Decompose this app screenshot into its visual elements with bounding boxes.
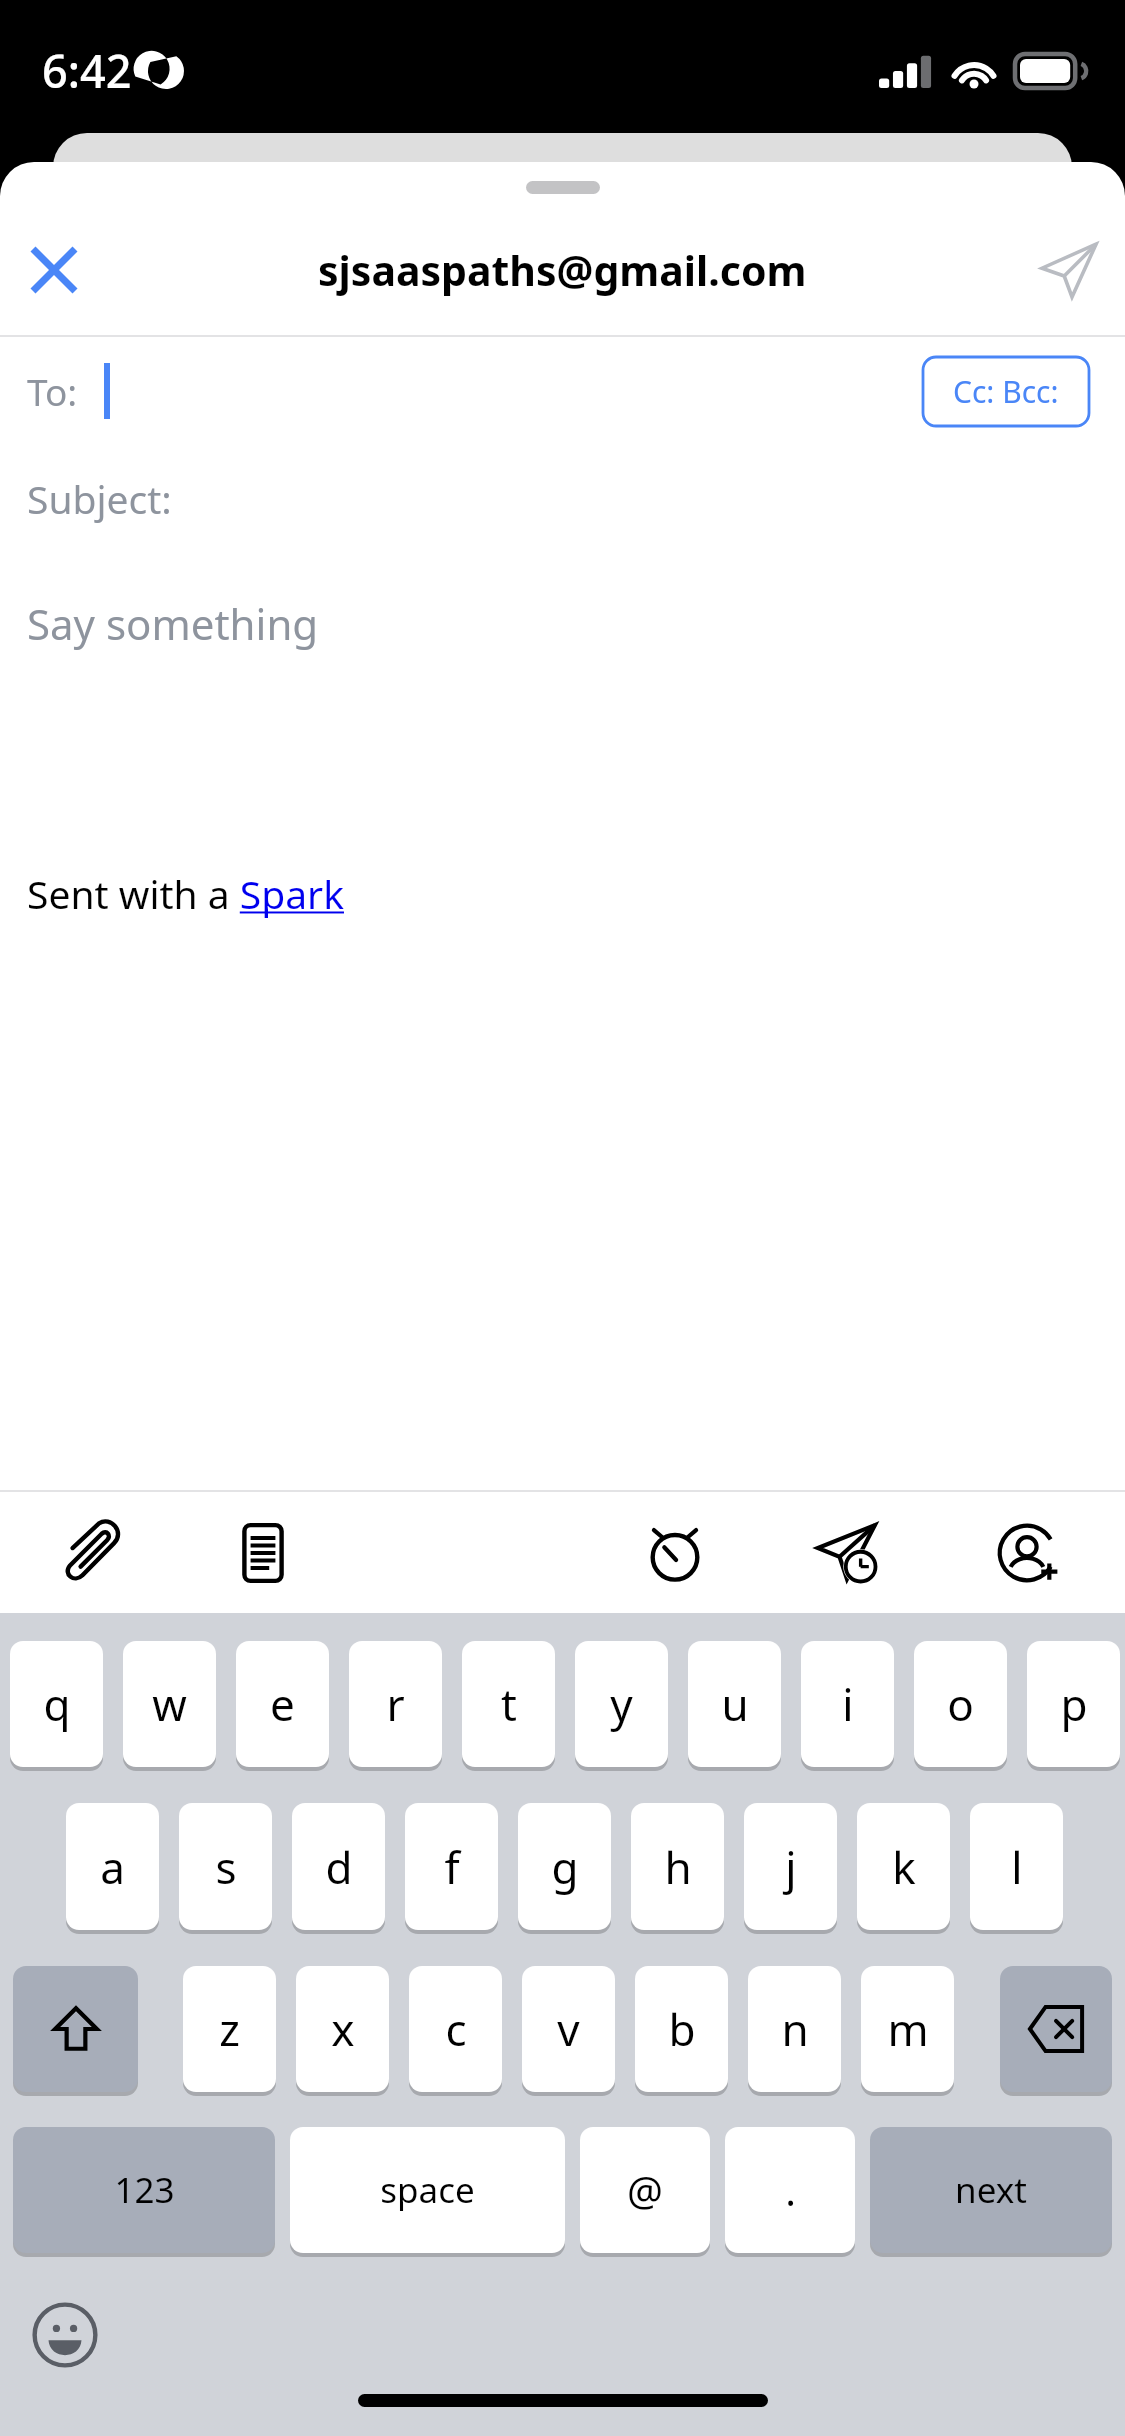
staticText: j — [785, 1837, 797, 1897]
button[interactable]: s — [179, 1803, 272, 1930]
button[interactable]: Reminder — [629, 1507, 721, 1599]
button[interactable]: h — [631, 1803, 724, 1930]
button[interactable]: e — [236, 1641, 329, 1767]
staticText: Say something — [27, 595, 319, 652]
staticText: @ — [627, 2163, 663, 2217]
staticText: y — [610, 1674, 633, 1734]
button[interactable]: Close — [11, 227, 97, 313]
button[interactable]: 123 — [13, 2127, 275, 2253]
staticText: e — [270, 1674, 295, 1734]
button[interactable]: k — [857, 1803, 950, 1930]
button[interactable]: u — [688, 1641, 781, 1767]
staticText: o — [947, 1674, 974, 1734]
staticText: t — [501, 1674, 517, 1734]
staticText: b — [668, 1999, 696, 2059]
button[interactable]: l — [970, 1803, 1063, 1930]
button[interactable]: Add contact — [981, 1507, 1073, 1599]
staticText: k — [892, 1837, 916, 1897]
button[interactable]: b — [635, 1966, 728, 2092]
other: Shift — [50, 2003, 102, 2055]
button[interactable]: t — [462, 1641, 555, 1767]
staticText: To: — [27, 366, 78, 416]
staticText: next — [955, 2166, 1027, 2214]
staticText: p — [1060, 1674, 1088, 1734]
button[interactable]: Backspace — [1000, 1966, 1112, 2092]
staticText: space — [380, 2166, 475, 2214]
button[interactable]: w — [123, 1641, 216, 1767]
staticText: i — [842, 1674, 854, 1734]
button[interactable]: r — [349, 1641, 442, 1767]
button[interactable]: p — [1027, 1641, 1120, 1767]
staticText: sjsaaspaths@gmail.com — [318, 242, 807, 298]
button[interactable]: g — [518, 1803, 611, 1930]
button[interactable]: Subject: — [0, 445, 1125, 551]
button[interactable]: c — [409, 1966, 502, 2092]
button[interactable]: f — [405, 1803, 498, 1930]
staticText: 6:42 — [42, 40, 132, 101]
button[interactable]: a — [66, 1803, 159, 1930]
staticText: Cc: Bcc: — [953, 371, 1059, 412]
staticText: z — [219, 1999, 240, 2059]
staticText: f — [444, 1837, 460, 1897]
staticText: g — [551, 1837, 579, 1897]
staticText: n — [781, 1999, 809, 2059]
staticText: u — [721, 1674, 749, 1734]
button[interactable]: i — [801, 1641, 894, 1767]
button[interactable]: space — [290, 2127, 565, 2253]
staticText: q — [43, 1674, 71, 1734]
staticText: . — [785, 2163, 796, 2217]
staticText: m — [887, 1999, 929, 2059]
staticText: Sent with a Spark — [27, 867, 344, 920]
button[interactable]: Send later — [801, 1507, 893, 1599]
button[interactable]: . — [725, 2127, 855, 2253]
staticText: l — [1011, 1837, 1023, 1897]
button[interactable]: d — [292, 1803, 385, 1930]
button[interactable]: Send — [1021, 222, 1117, 318]
staticText: d — [325, 1837, 353, 1897]
button[interactable]: n — [748, 1966, 841, 2092]
button[interactable]: v — [522, 1966, 615, 2092]
button[interactable]: q — [10, 1641, 103, 1767]
button[interactable]: Attach file — [47, 1507, 139, 1599]
button[interactable]: @ — [580, 2127, 710, 2253]
other: Backspace — [1027, 2000, 1085, 2058]
button[interactable]: Say something — [0, 551, 1125, 1490]
button[interactable]: o — [914, 1641, 1007, 1767]
button[interactable]: j — [744, 1803, 837, 1930]
staticText: r — [386, 1674, 405, 1734]
button[interactable]: x — [296, 1966, 389, 2092]
staticText: h — [664, 1837, 692, 1897]
button[interactable]: next — [870, 2127, 1112, 2253]
button[interactable]: Shift — [13, 1966, 138, 2092]
button[interactable]: m — [861, 1966, 954, 2092]
staticText: c — [445, 1999, 467, 2059]
button[interactable]: z — [183, 1966, 276, 2092]
button[interactable]: Cc: Bcc: — [923, 357, 1089, 426]
staticText: x — [331, 1999, 355, 2059]
staticText: Subject: — [27, 472, 172, 525]
button[interactable]: Templates — [217, 1507, 309, 1599]
button[interactable]: y — [575, 1641, 668, 1767]
staticText: w — [152, 1674, 187, 1734]
staticText: v — [557, 1999, 580, 2059]
staticText: s — [215, 1837, 237, 1897]
staticText: a — [100, 1837, 125, 1897]
button[interactable]: Emoji keyboard — [29, 2299, 101, 2371]
staticText: 123 — [114, 2166, 175, 2214]
